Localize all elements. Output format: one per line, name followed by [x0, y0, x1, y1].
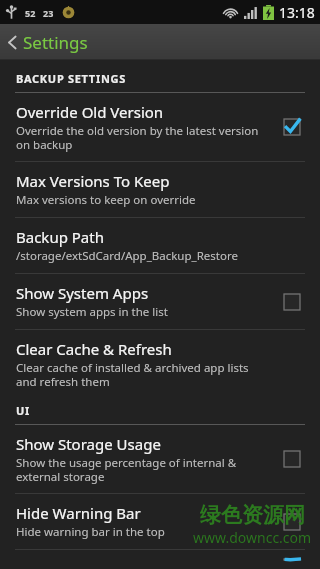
staticText: 52	[25, 7, 36, 19]
staticText: Override Old Version	[16, 102, 164, 122]
button[interactable]: Max Versions To Keep	[0, 162, 320, 217]
button[interactable]: Clear Cache & Refresh	[0, 330, 320, 398]
staticText: /storage/extSdCard/App_Backup_Restore	[16, 248, 238, 264]
staticText: UI	[16, 403, 30, 418]
staticText: Clear cache of installed & archived app …	[16, 360, 266, 389]
staticText: Show the usage percentage of internal & …	[16, 455, 266, 484]
button[interactable]: Backup Path	[0, 218, 320, 273]
button[interactable]: Override Old Version	[0, 93, 320, 161]
staticText: Settings	[23, 31, 88, 54]
staticText: www.downcc.com	[193, 528, 312, 547]
button[interactable]: Show System Apps	[0, 274, 320, 329]
staticText: BACKUP SETTINGS	[16, 71, 126, 86]
button[interactable]: Disabled	[276, 443, 308, 475]
staticText: Hide Warning Bar	[16, 503, 141, 523]
button[interactable]: Suggest Better Backup Path	[0, 550, 320, 569]
button[interactable]: Disabled	[276, 286, 308, 318]
staticText: Backup Path	[16, 227, 104, 247]
staticText: Override the old version by the latest v…	[16, 123, 266, 152]
other: Navigate up	[8, 35, 17, 50]
button[interactable]: Enabled	[276, 559, 308, 560]
staticText: Show system apps in the list	[16, 304, 168, 320]
staticText: 13:18	[279, 3, 315, 22]
staticText: 绿色资源网	[200, 502, 305, 528]
staticText: Max Versions To Keep	[16, 171, 170, 191]
staticText: Hide warning bar in the top	[16, 524, 165, 540]
button[interactable]: Enabled	[276, 111, 308, 143]
staticText: Show System Apps	[16, 283, 149, 303]
button[interactable]: Show Storage Usage	[0, 425, 320, 493]
staticText: Show Storage Usage	[16, 434, 161, 454]
button[interactable]: Disabled	[276, 506, 308, 538]
staticText: Max versions to keep on override	[16, 192, 196, 208]
button[interactable]: Navigate up	[0, 24, 102, 60]
button[interactable]: Hide Warning Bar	[0, 494, 320, 549]
staticText: Clear Cache & Refresh	[16, 339, 172, 359]
staticText: 23	[43, 7, 54, 19]
